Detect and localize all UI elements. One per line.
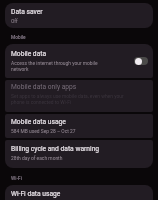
staticText: Wi-Fi data usage xyxy=(11,190,61,198)
staticText: 584 MB used Sep 28 – Oct 27 xyxy=(11,128,76,134)
staticText: Data saver xyxy=(11,8,43,16)
staticText: Mobile data usage xyxy=(11,118,66,126)
staticText: 28th day of each month xyxy=(11,155,63,161)
button[interactable]: Data saver xyxy=(5,3,153,28)
staticText: Set apps to always use mobile data, even… xyxy=(11,93,127,106)
staticText: Mobile xyxy=(11,35,26,41)
button[interactable]: Wi-Fi data usage xyxy=(5,185,153,200)
staticText: Mobile data only apps xyxy=(11,83,77,91)
staticText: Access the internet through your mobile … xyxy=(11,60,106,73)
button[interactable]: Mobile data toggle xyxy=(134,57,148,65)
button[interactable]: Billing cycle and data warning xyxy=(5,140,153,168)
staticText: Off xyxy=(11,18,18,24)
button[interactable]: Mobile data usage xyxy=(5,114,153,138)
staticText: Billing cycle and data warning xyxy=(11,145,100,153)
button[interactable]: Mobile data only apps xyxy=(5,80,153,112)
staticText: Mobile data xyxy=(11,50,47,58)
staticText: Wi-Fi xyxy=(11,176,22,182)
button[interactable]: Mobile data xyxy=(5,44,153,78)
